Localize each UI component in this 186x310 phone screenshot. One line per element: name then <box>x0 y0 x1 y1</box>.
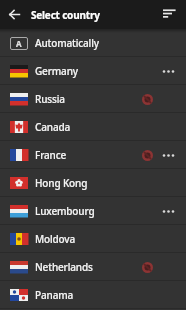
button[interactable]: France <box>0 141 186 169</box>
button[interactable]: Panama <box>0 281 186 309</box>
button[interactable] <box>0 0 29 29</box>
button[interactable]: Moldova <box>0 225 186 253</box>
button[interactable] <box>155 0 184 29</box>
button[interactable]: Russia <box>0 85 186 113</box>
button[interactable]: A <box>0 29 186 57</box>
staticText: Automatically <box>35 36 99 50</box>
button[interactable]: Hong Kong <box>0 169 186 197</box>
staticText: Panama <box>35 288 74 302</box>
button[interactable]: Netherlands <box>0 253 186 281</box>
button[interactable]: Luxembourg <box>0 197 186 225</box>
staticText: Moldova <box>35 232 76 246</box>
staticText: A <box>16 38 22 49</box>
staticText: Netherlands <box>35 260 93 274</box>
staticText: Hong Kong <box>35 176 88 190</box>
staticText: France <box>35 148 67 162</box>
button[interactable]: Canada <box>0 113 186 141</box>
staticText: Select country <box>31 8 100 22</box>
staticText: Canada <box>35 120 71 134</box>
staticText: Luxembourg <box>35 204 95 218</box>
staticText: Germany <box>35 64 78 78</box>
button[interactable]: Germany <box>0 57 186 85</box>
staticText: Russia <box>35 92 65 106</box>
